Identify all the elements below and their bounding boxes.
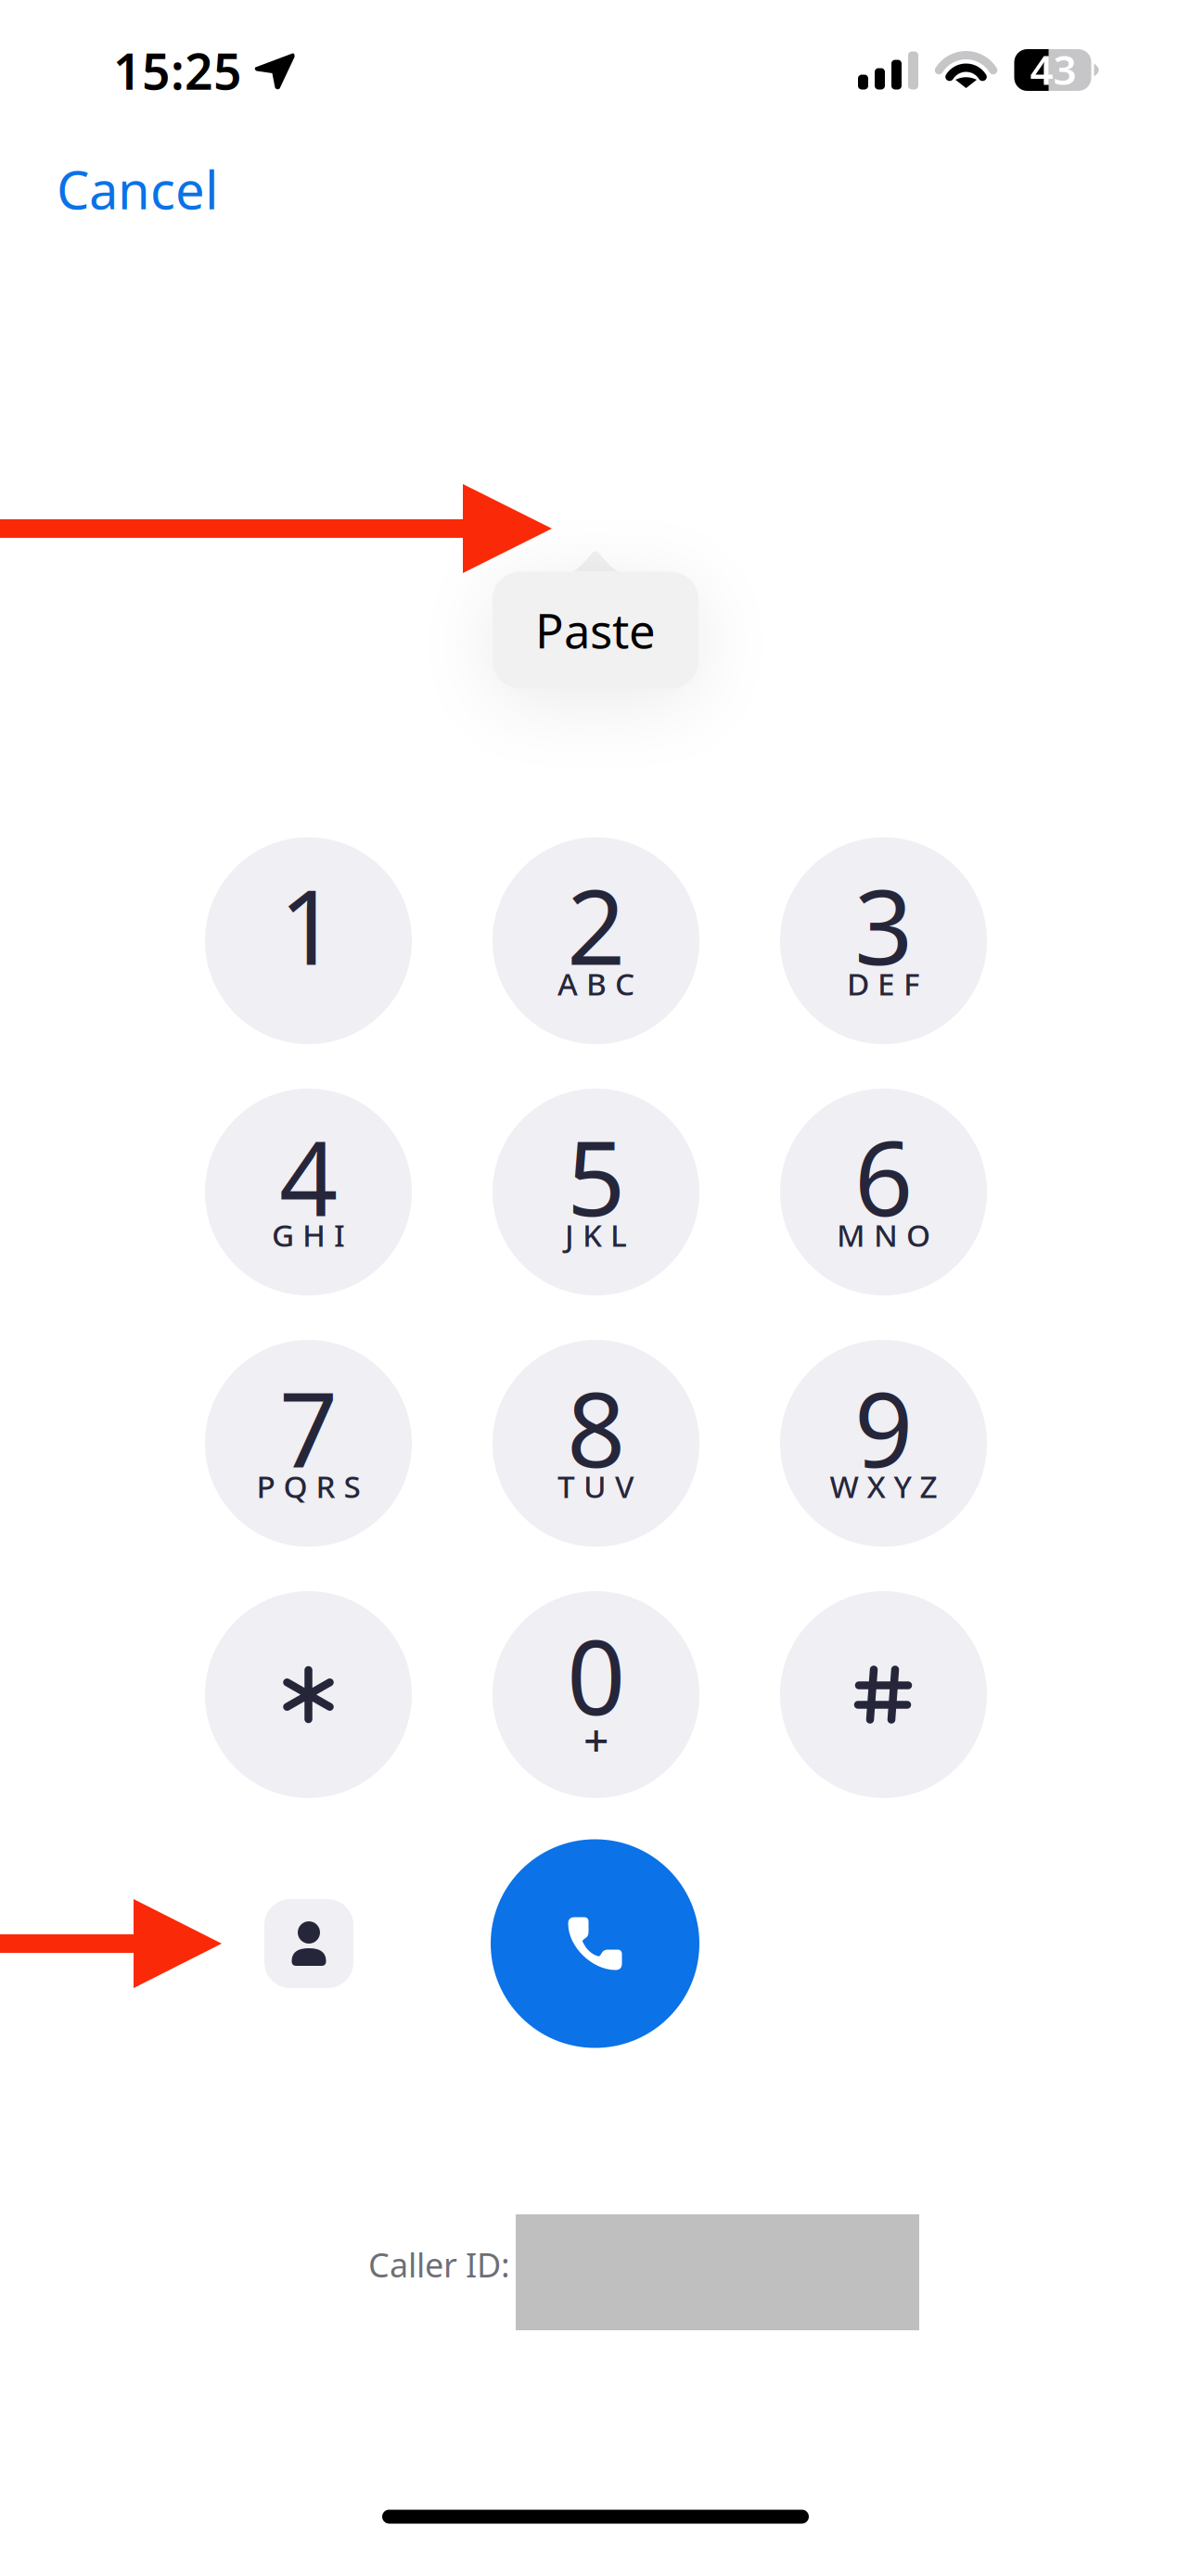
staticText: 1 (279, 857, 338, 993)
button[interactable]: 0 (493, 1591, 699, 1798)
staticText: J K L (565, 1214, 627, 1255)
button[interactable]: 4 (205, 1089, 412, 1295)
staticText: 2 (567, 857, 625, 993)
staticText: 15:25 (113, 38, 242, 103)
staticText: 43 (1030, 42, 1076, 96)
button[interactable]: 9 (780, 1340, 987, 1547)
staticText: M N O (837, 1214, 930, 1255)
button[interactable]: 6 (780, 1089, 987, 1295)
button[interactable]: # (780, 1591, 987, 1798)
staticText: Paste (535, 599, 656, 661)
staticText: Cancel (57, 155, 218, 224)
staticText: 8 (567, 1359, 625, 1496)
button[interactable]: Call (491, 1839, 699, 2048)
button[interactable]: 3 (780, 837, 987, 1044)
staticText: 4 (279, 1108, 338, 1244)
button[interactable]: Cancel (34, 136, 240, 242)
staticText: D E F (847, 963, 920, 1004)
staticText: G H I (272, 1214, 345, 1255)
staticText: 7 (279, 1359, 338, 1496)
button[interactable]: 2 (493, 837, 699, 1044)
staticText: 0 (567, 1607, 625, 1743)
staticText: P Q R S (256, 1465, 360, 1507)
button[interactable]: Contacts (264, 1899, 353, 1988)
staticText: A B C (557, 963, 634, 1004)
staticText: 5 (567, 1108, 625, 1244)
staticText: T U V (557, 1465, 634, 1507)
button[interactable]: Paste (493, 550, 698, 689)
staticText: W X Y Z (830, 1465, 937, 1507)
staticText: 9 (854, 1359, 913, 1496)
button[interactable]: 5 (493, 1089, 699, 1295)
button[interactable]: * (205, 1591, 412, 1798)
button[interactable]: 1 (205, 837, 412, 1044)
staticText: Caller ID: (368, 2242, 510, 2287)
button[interactable]: 7 (205, 1340, 412, 1547)
staticText: 3 (854, 857, 913, 993)
button[interactable]: 8 (493, 1340, 699, 1547)
staticText: 6 (854, 1108, 913, 1244)
staticText: + (583, 1710, 608, 1769)
